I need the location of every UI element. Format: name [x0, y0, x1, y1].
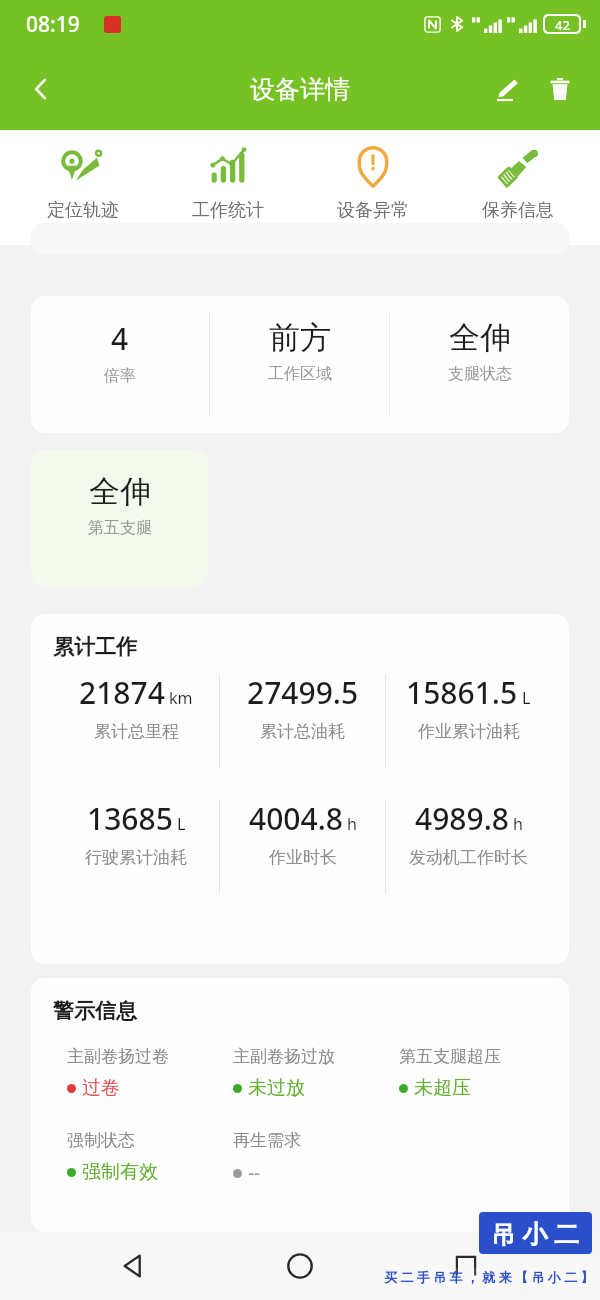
staticText: 未超压 — [414, 1076, 471, 1100]
staticText: 4 — [111, 318, 129, 359]
staticText: 再生需求 — [233, 1130, 301, 1151]
staticText: 4989.8 — [415, 798, 509, 839]
staticText: 27499.5 — [247, 672, 359, 713]
button[interactable]: 累计工作 — [31, 614, 569, 964]
button[interactable]: 警示信息 — [31, 978, 569, 1232]
staticText: 第五支腿超压 — [399, 1046, 501, 1067]
staticText: 第五支腿 — [88, 518, 152, 538]
staticText: 定位轨迹 — [47, 199, 119, 222]
staticText: 强制状态 — [67, 1130, 135, 1151]
staticText: h — [513, 813, 523, 835]
staticText: 42 — [555, 16, 570, 32]
staticText: 作业累计油耗 — [418, 721, 520, 742]
staticText: 设备详情 — [250, 74, 350, 105]
staticText: 行驶累计油耗 — [85, 847, 187, 868]
staticText: -- — [248, 1160, 261, 1186]
staticText: 警示信息 — [53, 998, 137, 1024]
staticText: 全伸 — [449, 318, 511, 357]
button[interactable]: 4 — [31, 296, 569, 433]
staticText: 强制有效 — [82, 1160, 158, 1184]
staticText: 工作区域 — [268, 364, 332, 384]
staticText: 倍率 — [104, 366, 136, 386]
button[interactable]: 定位轨迹 — [20, 144, 145, 222]
staticText: 累计总里程 — [94, 721, 179, 742]
staticText: 支腿状态 — [448, 364, 512, 384]
staticText: 主副卷扬过放 — [233, 1046, 335, 1067]
staticText: 工作统计 — [192, 199, 264, 222]
button[interactable]: Home — [268, 1234, 332, 1298]
staticText: 21874 — [79, 672, 165, 713]
staticText: 发动机工作时长 — [409, 847, 528, 868]
staticText: 15861.5 — [406, 672, 518, 713]
staticText: 吊 小 二 — [491, 1216, 580, 1250]
staticText: 主副卷扬过卷 — [67, 1046, 169, 1067]
staticText: 全伸 — [89, 472, 151, 511]
button[interactable]: 全伸 — [31, 450, 208, 587]
button[interactable]: 保养信息 — [455, 144, 580, 222]
staticText: 累计工作 — [53, 634, 137, 660]
staticText: 未过放 — [248, 1076, 305, 1100]
staticText: 累计总油耗 — [260, 721, 345, 742]
staticText: km — [169, 687, 193, 709]
staticText: 作业时长 — [269, 847, 337, 868]
staticText: h — [347, 813, 357, 835]
button[interactable]: Recents — [434, 1234, 498, 1298]
staticText: 买 二 手 吊 车 ， 就 来 【 吊 小 二 】 — [384, 1268, 594, 1286]
button[interactable]: Delete — [536, 65, 584, 113]
button[interactable]: Edit — [482, 65, 530, 113]
staticText: 08:19 — [26, 10, 80, 39]
button[interactable]: 设备异常 — [310, 144, 435, 222]
button[interactable]: Back — [102, 1234, 166, 1298]
staticText: 保养信息 — [482, 199, 554, 222]
button[interactable]: Back — [14, 62, 68, 116]
button[interactable]: 工作统计 — [165, 144, 290, 222]
staticText: 13685 — [87, 798, 173, 839]
staticText: 4004.8 — [249, 798, 343, 839]
staticText: 过卷 — [82, 1076, 120, 1100]
staticText: L — [177, 813, 186, 835]
staticText: 前方 — [269, 318, 331, 357]
staticText: L — [522, 687, 531, 709]
staticText: 设备异常 — [337, 199, 409, 222]
